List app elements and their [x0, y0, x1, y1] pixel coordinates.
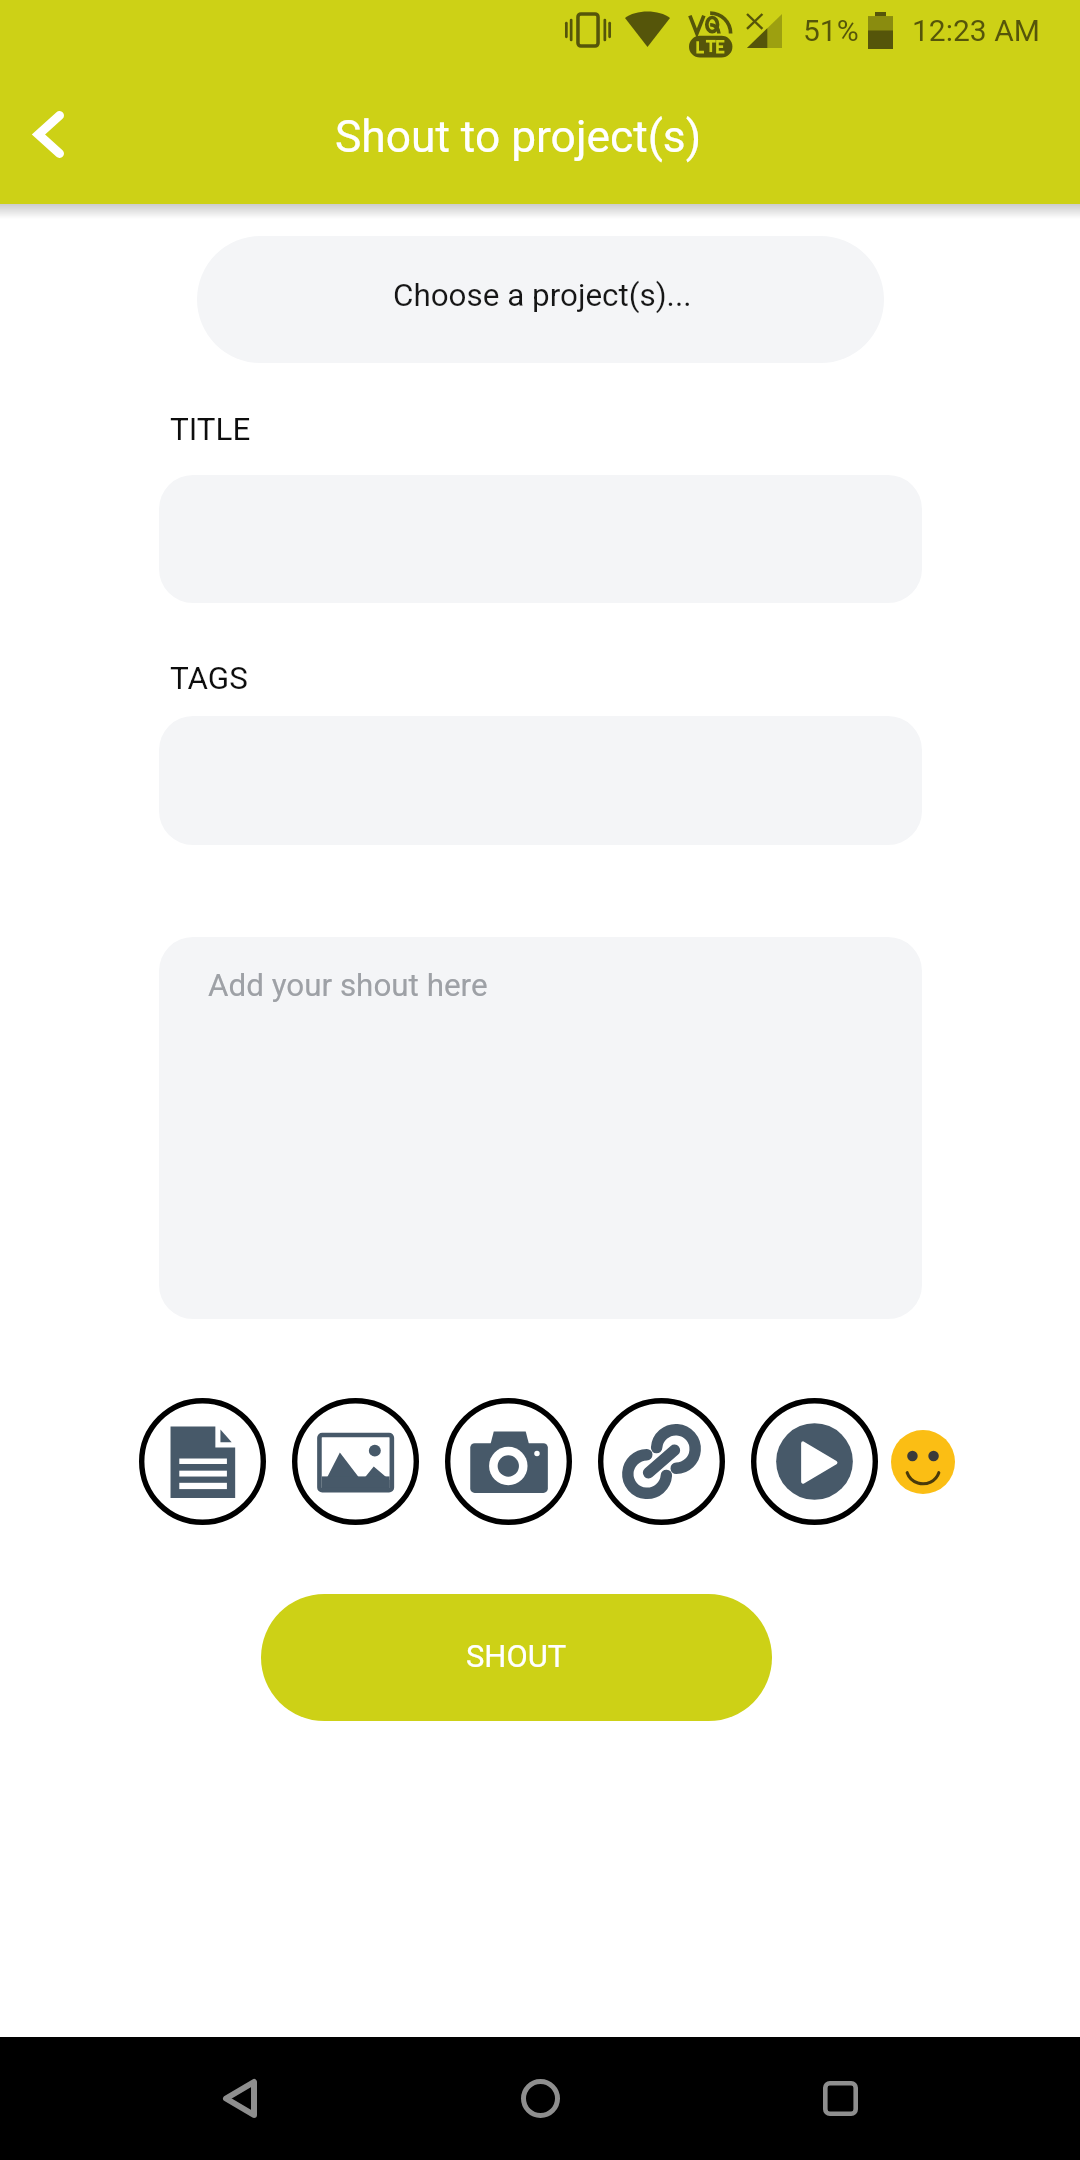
button[interactable]: Add your shout here: [159, 937, 922, 1319]
staticText: Add your shout here: [208, 967, 488, 1004]
staticText: TAGS: [170, 660, 248, 697]
staticText: Choose a project(s)...: [393, 277, 692, 314]
button[interactable]: Back: [0, 64, 98, 204]
button[interactable]: Home: [465, 2037, 615, 2160]
button[interactable]: Recent apps: [765, 2037, 915, 2160]
button[interactable]: Add emoji: [891, 1430, 955, 1494]
staticText: 12:23 AM: [912, 13, 1040, 48]
button[interactable]: Attach link: [598, 1398, 725, 1525]
staticText: TITLE: [170, 411, 251, 448]
button[interactable]: Attach image: [292, 1398, 419, 1525]
button[interactable]: Attach video: [751, 1398, 878, 1525]
button[interactable]: SHOUT: [261, 1594, 772, 1721]
button[interactable]: Choose a project(s)...: [197, 236, 884, 363]
button[interactable]: Attach document: [139, 1398, 266, 1525]
button[interactable]: Take photo: [445, 1398, 572, 1525]
staticText: Shout to project(s): [335, 111, 702, 163]
button[interactable]: Back: [165, 2037, 315, 2160]
staticText: 51%: [803, 13, 859, 48]
staticText: SHOUT: [466, 1638, 567, 1674]
